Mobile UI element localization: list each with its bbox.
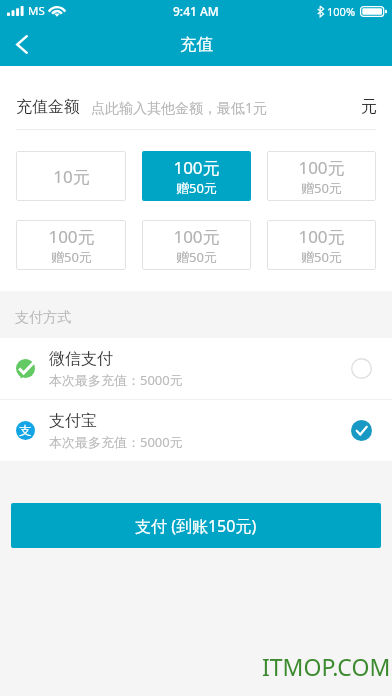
staticText: 100元: [298, 225, 345, 248]
button[interactable]: 100元: [142, 220, 251, 270]
staticText: 100元: [48, 225, 95, 248]
staticText: 支付宝: [49, 411, 97, 431]
button[interactable]: 100元: [142, 151, 251, 201]
staticText: 本次最多充值：5000元: [49, 371, 183, 389]
staticText: 100元: [173, 156, 220, 179]
staticText: 9:41 AM: [173, 3, 219, 19]
button[interactable]: 100元: [267, 151, 376, 201]
staticText: 元: [361, 97, 377, 117]
staticText: 100%: [327, 4, 356, 19]
staticText: 100元: [298, 156, 345, 179]
staticText: 充值金额: [16, 97, 80, 117]
staticText: 赠50元: [51, 248, 92, 266]
staticText: 点此输入其他金额，最低1元: [91, 98, 268, 117]
staticText: 支付 (到账150元): [135, 515, 257, 537]
button[interactable]: 10元: [16, 151, 126, 201]
button[interactable]: 支: [0, 400, 392, 461]
staticText: 本次最多充值：5000元: [49, 433, 183, 451]
staticText: 赠50元: [301, 179, 342, 197]
staticText: MS: [28, 3, 45, 19]
staticText: 10元: [53, 165, 90, 188]
staticText: 赠50元: [301, 248, 342, 266]
staticText: 100元: [173, 225, 220, 248]
button[interactable]: 100元: [267, 220, 376, 270]
staticText: 支: [19, 423, 32, 439]
button[interactable]: Back: [0, 22, 44, 66]
button[interactable]: 100元: [16, 220, 126, 270]
staticText: ITMOP.COM: [262, 651, 391, 682]
button[interactable]: 支付 (到账150元): [11, 503, 381, 548]
button[interactable]: 微信支付: [0, 338, 392, 399]
staticText: 赠50元: [176, 248, 217, 266]
staticText: 支付方式: [15, 309, 71, 327]
staticText: 微信支付: [49, 349, 113, 369]
staticText: 充值: [180, 34, 213, 55]
staticText: 赠50元: [176, 179, 217, 197]
